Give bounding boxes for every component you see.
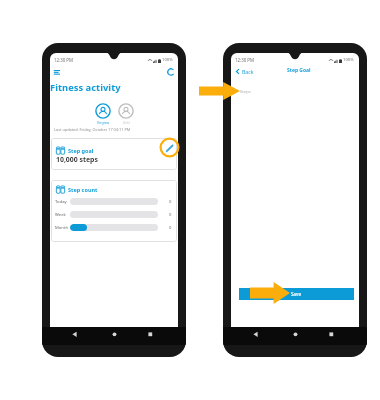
staticText: 0 [169, 225, 172, 231]
staticText: Fitness activity [50, 81, 121, 94]
button[interactable]: Refresh [166, 67, 176, 77]
staticText: Virgina [97, 120, 109, 125]
button[interactable]: Menu [52, 67, 62, 77]
staticText: 10,000 steps [56, 155, 98, 164]
staticText: Save [291, 291, 302, 297]
button[interactable]: Save [239, 288, 354, 300]
staticText: 0 [169, 212, 172, 218]
staticText: Today [55, 199, 67, 205]
staticText: Week [55, 212, 66, 218]
button[interactable]: Edit step goal [164, 143, 175, 154]
staticText: Add [123, 120, 130, 125]
staticText: Step goal [68, 147, 94, 154]
staticText: Step count [68, 186, 98, 193]
staticText: 12:30 PM [235, 57, 255, 63]
button[interactable]: Step goal [51, 138, 177, 170]
button[interactable]: Add [118, 103, 134, 125]
staticText: 12:30 PM [54, 57, 74, 63]
staticText: Steps [240, 89, 251, 95]
staticText: Back [242, 68, 254, 75]
staticText: 0 [169, 199, 172, 205]
staticText: Last updated: Friday, October 17 04:11 P… [54, 127, 131, 132]
staticText: Step Goal [287, 67, 311, 74]
button[interactable]: Virgina [95, 103, 111, 125]
staticText: 100% [343, 57, 354, 63]
staticText: 100% [162, 57, 173, 63]
staticText: Month [55, 225, 69, 231]
button[interactable]: Back [234, 68, 254, 75]
